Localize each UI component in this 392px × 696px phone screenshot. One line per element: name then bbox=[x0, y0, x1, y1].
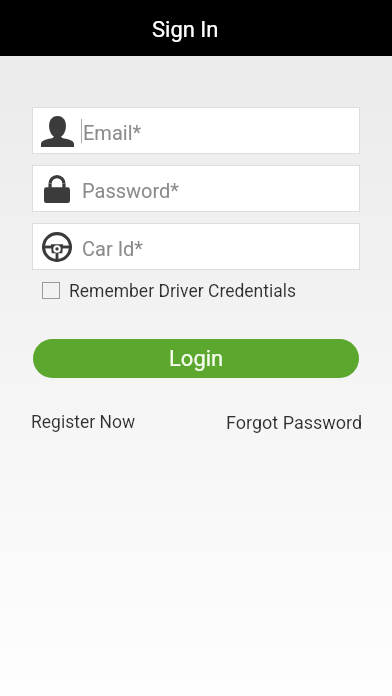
button[interactable]: Car Id* bbox=[32, 223, 360, 270]
button[interactable]: Forgot Password bbox=[226, 412, 363, 433]
staticText: Email* bbox=[83, 121, 142, 144]
other: User bbox=[41, 116, 74, 147]
staticText: Sign In bbox=[152, 17, 219, 43]
other: Password bbox=[44, 175, 70, 203]
button[interactable]: Email* bbox=[32, 107, 360, 154]
button[interactable]: Remember Driver Credentials bbox=[42, 281, 297, 299]
staticText: Car Id* bbox=[82, 237, 143, 260]
button[interactable]: Password* bbox=[32, 165, 360, 212]
staticText: Login bbox=[169, 346, 224, 372]
other: Car Id bbox=[42, 232, 72, 262]
button[interactable]: Register Now bbox=[31, 412, 136, 433]
staticText: Remember Driver Credentials bbox=[69, 281, 297, 299]
staticText: Register Now bbox=[31, 412, 136, 433]
button[interactable]: Login bbox=[33, 339, 359, 378]
staticText: Password* bbox=[82, 179, 179, 202]
staticText: Forgot Password bbox=[226, 412, 363, 433]
